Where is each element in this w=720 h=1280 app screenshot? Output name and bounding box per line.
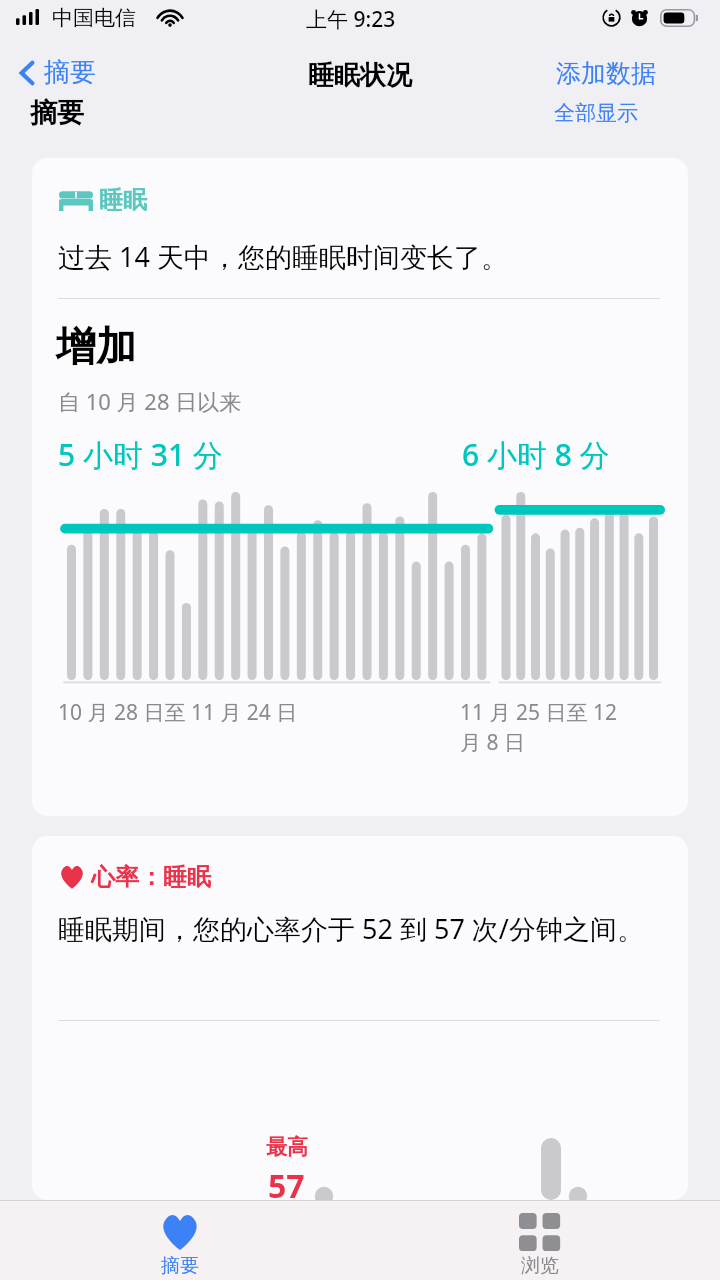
button[interactable]: 添加数据 [556,58,656,89]
staticText: 摘要 [44,56,96,89]
staticText: 摘要 [161,1254,199,1278]
button[interactable]: 摘要 [0,1200,360,1280]
button[interactable]: 睡眠 [32,158,688,816]
button[interactable]: 心率：睡眠 [32,836,688,1200]
button[interactable]: 摘要 [14,56,100,89]
staticText: 57 [268,1164,305,1200]
staticText: 10 月 28 日至 11 月 24 日 [58,698,298,727]
staticText: 浏览 [521,1254,559,1278]
staticText: 自 10 月 28 日以来 [58,386,242,416]
staticText: 心率：睡眠 [91,862,211,892]
button[interactable]: 浏览 [360,1200,720,1280]
staticText: 上午 9:23 [306,5,396,34]
staticText: 睡眠期间，您的心率介于 52 到 57 次/分钟之间。 [58,910,644,947]
staticText: 睡眠状况 [308,59,412,92]
staticText: 摘要 [30,96,84,130]
staticText: 中国电信 [52,5,136,31]
staticText: 6 小时 8 分 [462,434,610,475]
staticText: 最高 [266,1134,308,1160]
staticText: 睡眠 [99,185,147,215]
staticText: 11 月 25 日至 12 月 8 日 [460,698,640,757]
staticText: 增加 [56,321,136,371]
staticText: 5 小时 31 分 [58,434,223,475]
button[interactable]: 全部显示 [554,100,638,126]
staticText: 过去 14 天中，您的睡眠时间变长了。 [58,238,508,275]
